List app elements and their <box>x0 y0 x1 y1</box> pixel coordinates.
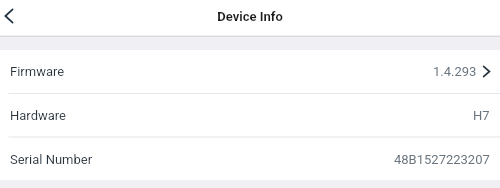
button[interactable]: Serial Number <box>0 138 500 180</box>
staticText: 1.4.293 <box>433 64 477 79</box>
button[interactable]: Firmware <box>0 50 500 93</box>
button[interactable]: Hardware <box>0 94 500 136</box>
staticText: Hardware <box>10 108 66 123</box>
staticText: Device Info <box>217 9 283 24</box>
staticText: Firmware <box>10 64 65 79</box>
staticText: 48B1527223207 <box>394 152 490 167</box>
button[interactable]: Back <box>0 0 18 31</box>
staticText: Serial Number <box>10 152 93 167</box>
staticText: H7 <box>473 108 490 123</box>
